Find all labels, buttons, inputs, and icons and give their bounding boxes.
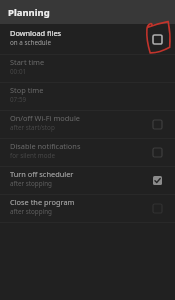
staticText: Stop time (10, 85, 44, 95)
staticText: Disable notifications (10, 141, 81, 151)
staticText: Start time (10, 57, 45, 67)
button[interactable]: On/off Wi-Fi module (0, 111, 175, 138)
staticText: after start/stop (10, 123, 55, 132)
button[interactable]: Download files (0, 24, 175, 54)
staticText: 07:59 (10, 95, 27, 104)
staticText: on a schedule (10, 38, 51, 47)
staticText: 00:01 (10, 67, 27, 76)
button[interactable]: Close the program (0, 195, 175, 222)
staticText: after stopping (10, 179, 52, 188)
staticText: after stopping (10, 207, 52, 216)
staticText: Close the program (10, 197, 75, 207)
staticText: On/off Wi-Fi module (10, 113, 80, 123)
button[interactable]: Start time (0, 55, 175, 82)
staticText: Download files (10, 28, 62, 38)
button[interactable]: Stop time (0, 83, 175, 110)
staticText: Turn off scheduler (10, 169, 74, 179)
button[interactable]: Disable notifications (0, 139, 175, 166)
staticText: for silent mode (10, 151, 55, 160)
staticText: Planning (8, 6, 50, 19)
button[interactable]: Turn off scheduler (0, 167, 175, 194)
